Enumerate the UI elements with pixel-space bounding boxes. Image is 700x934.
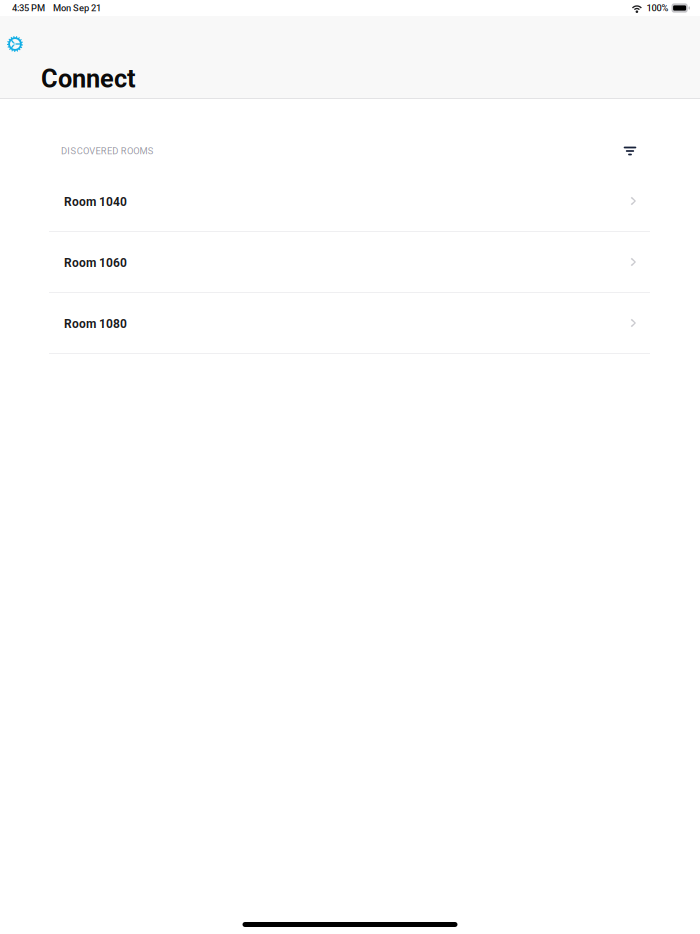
staticText: DISCOVERED ROOMS bbox=[61, 145, 154, 156]
button[interactable]: Room 1040 bbox=[49, 171, 650, 232]
button[interactable]: Room 1080 bbox=[49, 293, 650, 354]
staticText: 4:35 PM bbox=[12, 2, 45, 13]
button[interactable]: Settings bbox=[2, 33, 28, 55]
staticText: 100% bbox=[646, 2, 668, 13]
staticText: Mon Sep 21 bbox=[53, 2, 101, 13]
staticText: Room 1040 bbox=[64, 195, 127, 209]
button[interactable]: Filter bbox=[618, 140, 642, 162]
staticText: Room 1060 bbox=[64, 256, 127, 270]
staticText: Room 1080 bbox=[64, 317, 127, 331]
button[interactable]: Room 1060 bbox=[49, 232, 650, 293]
staticText: Connect bbox=[41, 64, 136, 94]
